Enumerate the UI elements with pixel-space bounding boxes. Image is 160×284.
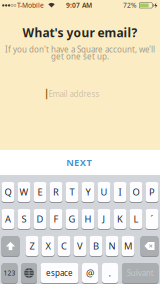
staticText: A [5, 213, 11, 225]
button[interactable]: Delete [140, 235, 158, 256]
staticText: If you don't have a Square account, we'l… [5, 44, 155, 55]
staticText: espace [46, 268, 73, 278]
button[interactable]: T [65, 181, 78, 202]
staticText: D [36, 213, 43, 225]
button[interactable]: Z [25, 235, 38, 256]
button[interactable]: Next keyboard [21, 262, 37, 283]
staticText: E [37, 186, 42, 198]
button[interactable]: Shift [1, 235, 19, 256]
button[interactable]: M [121, 235, 134, 256]
button[interactable]: Q [1, 181, 14, 202]
button[interactable]: F [49, 208, 62, 229]
staticText: P [149, 186, 155, 198]
button[interactable]: E [33, 181, 46, 202]
button[interactable]: W [17, 181, 30, 202]
button[interactable]: H [81, 208, 94, 229]
staticText: J [102, 213, 105, 225]
staticText: 9:07 AM [66, 1, 92, 10]
staticText: C [61, 240, 67, 252]
button[interactable]: Y [81, 181, 94, 202]
button[interactable]: 123 [1, 262, 17, 283]
button[interactable]: G [65, 208, 78, 229]
staticText: N [108, 240, 115, 252]
staticText: Suivant [127, 268, 154, 278]
staticText: Z [29, 240, 34, 252]
staticText: H [84, 213, 91, 225]
staticText: V [77, 240, 83, 252]
button[interactable]: Email address [0, 83, 160, 105]
staticText: E [74, 156, 79, 168]
staticText: U [100, 186, 107, 198]
staticText: B [93, 240, 99, 252]
button[interactable]: O [129, 181, 142, 202]
button[interactable]: V [73, 235, 86, 256]
staticText: R [53, 186, 59, 198]
button[interactable]: @ [82, 262, 98, 283]
staticText: K [117, 213, 123, 225]
button[interactable]: Suivant [122, 262, 158, 283]
staticText: X [80, 156, 86, 168]
staticText: G [68, 213, 75, 225]
staticText: ´ [150, 213, 153, 225]
button[interactable]: . [102, 262, 118, 283]
staticText: Email address [48, 89, 99, 99]
button[interactable]: X [41, 235, 54, 256]
button[interactable]: R [49, 181, 62, 202]
staticText: F [53, 213, 58, 225]
staticText: Q [4, 186, 11, 198]
button[interactable]: A [1, 208, 14, 229]
button[interactable]: K [113, 208, 126, 229]
staticText: Y [85, 186, 90, 198]
button[interactable]: S [17, 208, 30, 229]
staticText: @ [86, 267, 94, 279]
staticText: N [66, 156, 74, 168]
staticText: . [108, 267, 111, 279]
staticText: L [133, 213, 138, 225]
staticText: T [69, 186, 74, 198]
button[interactable]: U [97, 181, 110, 202]
staticText: M [124, 240, 132, 252]
staticText: 72% [123, 1, 137, 10]
staticText: I [118, 186, 121, 198]
staticText: T-Mobile [17, 1, 44, 10]
button[interactable]: N [0, 150, 160, 175]
button[interactable]: L [129, 208, 142, 229]
staticText: S [21, 213, 26, 225]
button[interactable]: espace [40, 262, 78, 283]
button[interactable]: N [105, 235, 118, 256]
button[interactable]: D [33, 208, 46, 229]
staticText: T [87, 156, 92, 168]
button[interactable]: J [97, 208, 110, 229]
button[interactable]: C [57, 235, 70, 256]
button[interactable]: ´ [145, 208, 158, 229]
button[interactable]: B [89, 235, 102, 256]
staticText: What's your email? [22, 24, 137, 40]
staticText: O [132, 186, 139, 198]
staticText: X [45, 240, 50, 252]
button[interactable]: P [145, 181, 158, 202]
staticText: get one set up. [51, 51, 109, 62]
button[interactable]: I [113, 181, 126, 202]
staticText: 123 [3, 269, 15, 277]
staticText: W [19, 186, 28, 198]
